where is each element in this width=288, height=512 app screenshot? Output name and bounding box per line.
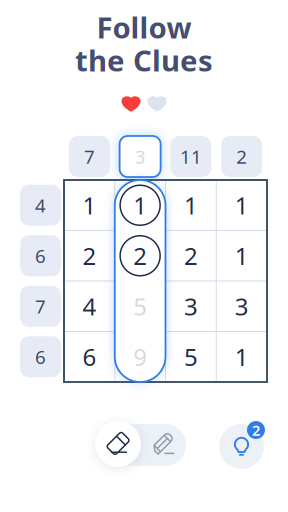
staticText: 1 [235,341,249,373]
button[interactable]: 4 [20,185,61,226]
button[interactable]: Hint [219,424,264,469]
staticText: 1 [235,240,249,272]
staticText: 2 [82,240,96,272]
button[interactable]: 6 [20,336,61,377]
button[interactable]: Pencil [142,424,186,466]
staticText: 6 [35,243,46,268]
staticText: 3 [235,290,249,322]
staticText: 1 [184,189,198,221]
staticText: 9 [133,341,147,373]
staticText: 2 [133,240,147,272]
button[interactable]: 7 [20,286,61,327]
staticText: 2 [252,420,260,440]
staticText: Follow [96,7,191,46]
staticText: 5 [133,290,147,322]
staticText: 6 [82,341,96,373]
staticText: 1 [235,189,249,221]
button[interactable]: 6 [20,235,61,276]
button[interactable]: 11 [170,136,211,177]
staticText: the Clues [75,40,213,79]
staticText: 1 [82,189,96,221]
staticText: 5 [184,341,198,373]
staticText: 1 [133,189,147,221]
staticText: 2 [236,144,247,169]
button[interactable]: 2 [221,136,262,177]
button[interactable]: Eraser [95,421,141,467]
staticText: 4 [82,290,96,322]
staticText: 2 [184,240,198,272]
staticText: 4 [35,193,46,218]
button[interactable]: 3 [120,136,161,177]
staticText: 7 [35,294,46,319]
staticText: 11 [180,144,202,169]
button[interactable]: 7 [69,136,110,177]
staticText: 3 [184,290,198,322]
staticText: 3 [135,144,146,169]
staticText: 6 [35,344,46,369]
staticText: 7 [84,144,95,169]
